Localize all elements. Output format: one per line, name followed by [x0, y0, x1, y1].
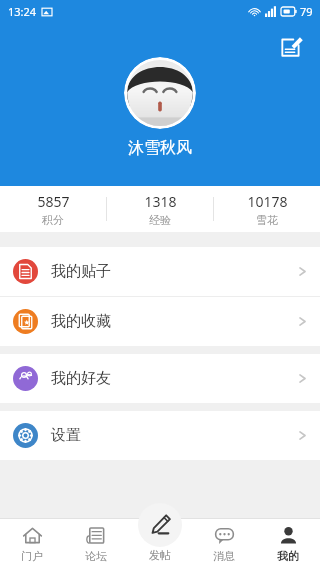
- staticText: 79: [300, 4, 313, 19]
- staticText: 消息: [213, 549, 235, 563]
- button[interactable]: 我的: [256, 519, 320, 569]
- staticText: 门户: [21, 549, 43, 563]
- staticText: 我的: [277, 549, 299, 563]
- button[interactable]: [124, 57, 196, 129]
- staticText: 我的好友: [51, 369, 111, 388]
- button[interactable]: 我的贴子: [0, 247, 320, 296]
- staticText: 设置: [51, 426, 81, 445]
- button[interactable]: 门户: [0, 519, 64, 569]
- staticText: 13:24: [8, 4, 37, 19]
- staticText: 10178: [247, 192, 288, 211]
- button[interactable]: 我的收藏: [0, 297, 320, 346]
- staticText: 经验: [149, 213, 171, 227]
- button[interactable]: 我的好友: [0, 354, 320, 403]
- button[interactable]: 设置: [0, 411, 320, 460]
- other: 发帖: [138, 503, 182, 547]
- staticText: 沐雪秋风: [128, 138, 192, 158]
- button[interactable]: 发帖: [138, 503, 182, 565]
- staticText: 我的收藏: [51, 312, 111, 331]
- staticText: 积分: [42, 213, 64, 227]
- button[interactable]: 1318: [107, 192, 213, 227]
- button[interactable]: Edit profile: [272, 27, 312, 67]
- button[interactable]: 10178: [214, 192, 320, 227]
- staticText: 发帖: [149, 548, 171, 562]
- staticText: 论坛: [85, 549, 107, 563]
- staticText: 雪花: [256, 213, 278, 227]
- button[interactable]: 论坛: [64, 519, 128, 569]
- button[interactable]: 消息: [192, 519, 256, 569]
- staticText: 1318: [144, 192, 177, 211]
- button[interactable]: 5857: [0, 192, 106, 227]
- staticText: 我的贴子: [51, 262, 111, 281]
- staticText: 5857: [37, 192, 70, 211]
